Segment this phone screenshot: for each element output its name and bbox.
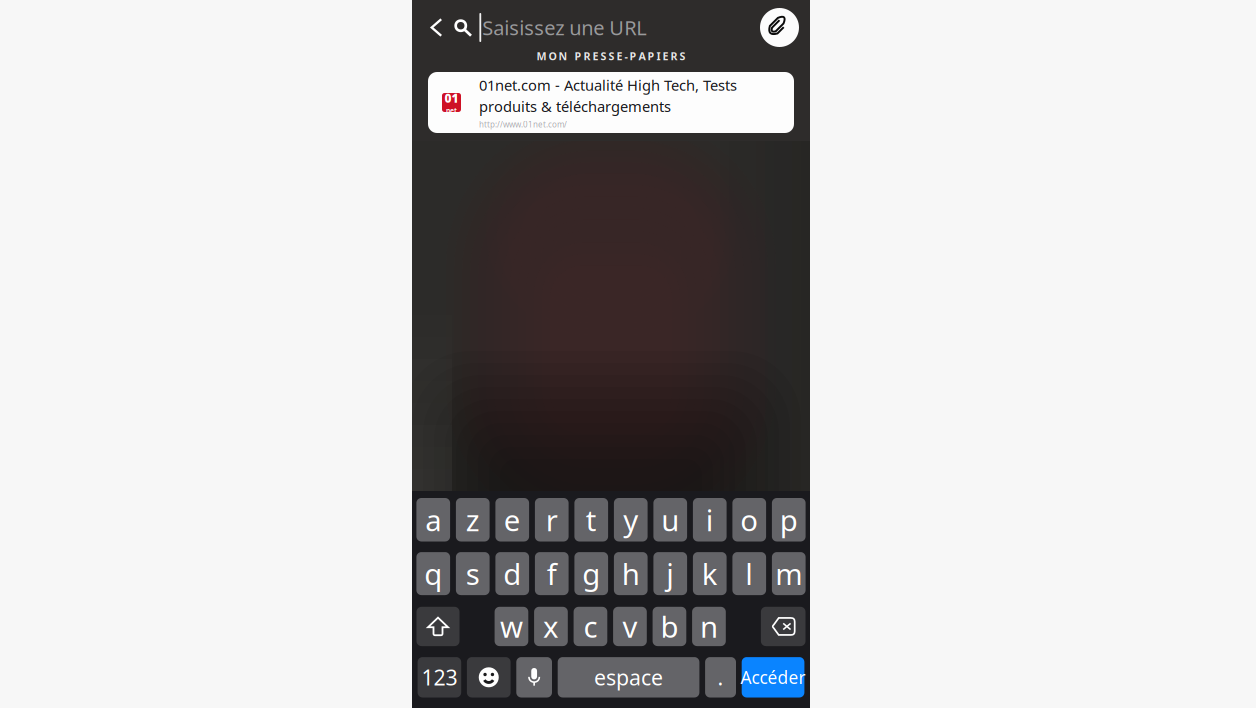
button[interactable]: Emoji — [467, 657, 511, 697]
staticText: o — [740, 500, 758, 539]
staticText: e — [504, 500, 521, 539]
button[interactable]: y — [614, 498, 648, 541]
button[interactable]: q — [416, 552, 450, 595]
staticText: q — [424, 554, 442, 593]
button[interactable]: z — [456, 498, 490, 541]
button[interactable]: o — [732, 498, 766, 541]
staticText: i — [706, 500, 714, 539]
button[interactable]: t — [574, 498, 608, 541]
staticText: z — [466, 500, 480, 539]
staticText: p — [780, 500, 798, 539]
button[interactable]: . — [705, 657, 736, 697]
button[interactable]: j — [653, 552, 687, 595]
button[interactable]: e — [495, 498, 529, 541]
button[interactable]: p — [772, 498, 806, 541]
staticText: n — [700, 607, 718, 646]
button[interactable]: Accéder — [742, 657, 804, 697]
button[interactable]: l — [732, 552, 766, 595]
staticText: u — [661, 500, 679, 539]
button[interactable]: Back — [412, 5, 454, 49]
staticText: d — [503, 554, 521, 593]
button[interactable]: Dictate — [516, 657, 552, 697]
staticText: M O N P R E S S E - P A P I E R S — [536, 49, 685, 63]
staticText: 01net.com - Actualité High Tech, Tests — [479, 75, 737, 95]
button[interactable]: b — [653, 607, 686, 646]
button[interactable]: w — [495, 607, 528, 646]
staticText: w — [500, 607, 523, 646]
button[interactable]: 01 — [428, 72, 794, 133]
staticText: x — [543, 607, 559, 646]
button[interactable]: n — [692, 607, 726, 646]
button[interactable]: i — [693, 498, 727, 541]
staticText: s — [466, 554, 480, 593]
button[interactable]: Attach — [760, 8, 799, 47]
staticText: f — [547, 554, 557, 593]
staticText: Accéder — [741, 666, 806, 689]
button[interactable]: h — [614, 552, 648, 595]
staticText: t — [586, 500, 597, 539]
button[interactable]: Shift — [416, 607, 459, 646]
staticText: espace — [594, 663, 663, 691]
staticText: h — [622, 554, 640, 593]
staticText: r — [546, 500, 558, 539]
button[interactable]: s — [456, 552, 490, 595]
staticText: produits & téléchargements — [479, 97, 671, 116]
button[interactable]: r — [535, 498, 569, 541]
staticText: y — [623, 500, 638, 539]
staticText: j — [666, 554, 674, 593]
staticText: . — [718, 663, 724, 691]
staticText: 01 — [444, 90, 458, 106]
staticText: v — [622, 607, 637, 646]
button[interactable]: x — [534, 607, 568, 646]
button[interactable]: m — [772, 552, 806, 595]
button[interactable]: u — [653, 498, 687, 541]
button[interactable]: 123 — [418, 657, 461, 697]
button[interactable]: espace — [558, 657, 699, 697]
button[interactable]: f — [535, 552, 569, 595]
button[interactable]: a — [416, 498, 450, 541]
staticText: b — [660, 607, 678, 646]
staticText: m — [775, 554, 802, 593]
staticText: l — [745, 554, 753, 593]
staticText: http://www.01net.com/ — [479, 119, 567, 130]
staticText: Saisissez une URL — [482, 14, 646, 41]
button[interactable]: Search — [454, 5, 479, 49]
button[interactable]: Delete — [761, 607, 805, 646]
staticText: k — [702, 554, 718, 593]
button[interactable]: v — [613, 607, 647, 646]
button[interactable]: k — [693, 552, 727, 595]
button[interactable]: d — [495, 552, 529, 595]
button[interactable]: g — [574, 552, 608, 595]
staticText: a — [425, 500, 441, 539]
button[interactable]: c — [574, 607, 607, 646]
staticText: c — [583, 607, 597, 646]
staticText: net — [446, 106, 457, 115]
staticText: 123 — [421, 663, 457, 691]
staticText: g — [582, 554, 600, 593]
